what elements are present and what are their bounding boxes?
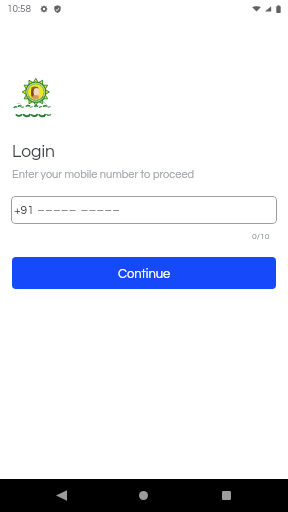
staticText: +91 (14, 204, 34, 216)
button[interactable]: Home (123, 479, 164, 512)
staticText: 0/10 (252, 232, 270, 241)
button[interactable]: +91 (11, 196, 277, 224)
staticText: Enter your mobile number to proceed (12, 169, 195, 180)
staticText: Login (12, 143, 55, 161)
button[interactable]: Recent apps (206, 479, 247, 512)
button[interactable]: Back (40, 479, 82, 512)
staticText: Continue (118, 267, 171, 280)
staticText: 10:58 (7, 4, 32, 14)
button[interactable]: Continue (12, 257, 276, 289)
